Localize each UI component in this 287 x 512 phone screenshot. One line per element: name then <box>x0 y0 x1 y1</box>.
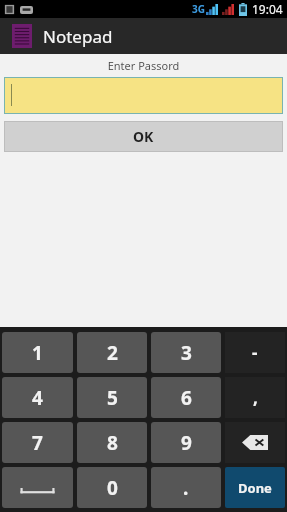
staticText: 8 <box>107 430 118 456</box>
staticText: 3G <box>192 2 205 16</box>
button[interactable]: 9 <box>151 422 221 463</box>
button[interactable]: OK <box>4 121 283 152</box>
staticText: 3 <box>181 340 192 366</box>
button[interactable]: . <box>151 467 221 508</box>
staticText: 6 <box>181 385 192 411</box>
staticText: Notepad <box>43 25 113 48</box>
staticText: 1 <box>32 340 43 366</box>
button[interactable]: 2 <box>77 332 147 373</box>
staticText: 0 <box>107 475 118 501</box>
button[interactable]: Space <box>2 467 73 508</box>
button[interactable]: 1 <box>2 332 73 373</box>
staticText: - <box>252 341 258 364</box>
staticText: Done <box>238 479 272 497</box>
button[interactable]: Done <box>225 467 285 508</box>
staticText: Enter Passord <box>0 58 287 73</box>
button[interactable]: 6 <box>151 377 221 418</box>
staticText: 5 <box>107 385 118 411</box>
button[interactable]: Backspace <box>225 422 285 463</box>
button[interactable]: , <box>225 377 285 418</box>
staticText: , <box>253 386 258 409</box>
button[interactable]: 0 <box>77 467 147 508</box>
button[interactable] <box>4 77 283 114</box>
button[interactable]: 7 <box>2 422 73 463</box>
staticText: OK <box>133 127 154 146</box>
staticText: 19:04 <box>252 1 283 17</box>
button[interactable]: 3 <box>151 332 221 373</box>
staticText: 4 <box>32 385 43 411</box>
staticText: . <box>183 475 189 501</box>
staticText: 2 <box>107 340 118 366</box>
staticText: 7 <box>32 430 43 456</box>
staticText: 9 <box>181 430 192 456</box>
button[interactable]: - <box>225 332 285 373</box>
button[interactable]: 5 <box>77 377 147 418</box>
button[interactable]: 4 <box>2 377 73 418</box>
button[interactable]: 8 <box>77 422 147 463</box>
